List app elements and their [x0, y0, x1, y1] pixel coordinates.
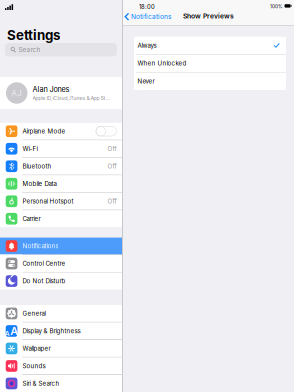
staticText: Airplane Mode: [22, 127, 65, 135]
staticText: A: [10, 324, 18, 338]
button[interactable]: Control Centre: [0, 255, 122, 272]
staticText: Mobile Data: [22, 180, 56, 187]
staticText: A: [5, 329, 10, 338]
staticText: Display & Brightness: [22, 327, 80, 335]
staticText: Always: [137, 42, 156, 49]
staticText: AJ: [11, 88, 22, 98]
staticText: Notifications: [22, 242, 58, 250]
staticText: Sounds: [22, 362, 45, 370]
button[interactable]: When Unlocked: [134, 55, 286, 72]
staticText: Never: [137, 77, 154, 85]
button[interactable]: Airplane Mode: [0, 123, 122, 140]
staticText: Off: [107, 145, 116, 152]
staticText: Settings: [7, 27, 60, 43]
staticText: Control Centre: [22, 260, 65, 267]
button[interactable]: Do Not Disturb: [0, 273, 122, 289]
button[interactable]: General: [0, 305, 122, 322]
button[interactable]: A: [0, 322, 122, 339]
button[interactable]: Never: [134, 73, 286, 90]
staticText: Personal Hotspot: [22, 197, 73, 205]
button[interactable]: Always: [134, 37, 286, 54]
button[interactable]: Siri & Search: [0, 375, 122, 392]
button[interactable]: Wi-Fi: [0, 140, 122, 157]
button[interactable]: Notifications: [122, 11, 174, 22]
staticText: Notifications: [131, 13, 171, 21]
staticText: Do Not Disturb: [22, 277, 65, 285]
staticText: Off: [107, 197, 116, 205]
staticText: Search: [19, 46, 41, 53]
staticText: Show Previews: [183, 12, 234, 20]
button[interactable]: Personal Hotspot: [0, 193, 122, 210]
staticText: Alan Jones: [32, 85, 69, 94]
button[interactable]: Notifications: [0, 238, 122, 254]
staticText: General: [22, 310, 45, 317]
staticText: 100%: [270, 4, 283, 9]
staticText: Wallpaper: [22, 345, 50, 352]
button[interactable]: AJ: [0, 77, 122, 109]
staticText: Siri & Search: [22, 380, 59, 387]
button[interactable]: Sounds: [0, 357, 122, 374]
button[interactable]: Mobile Data: [0, 175, 122, 192]
staticText: Wi-Fi: [22, 145, 37, 152]
button[interactable]: Wallpaper: [0, 340, 122, 357]
staticText: When Unlocked: [137, 60, 186, 67]
staticText: Apple ID, iCloud, iTunes & App St…: [32, 95, 109, 101]
button[interactable]: Bluetooth: [0, 158, 122, 175]
staticText: Bluetooth: [22, 162, 51, 170]
staticText: 18:00: [139, 3, 155, 10]
staticText: Off: [107, 162, 116, 170]
staticText: Carrier: [22, 215, 40, 222]
button[interactable]: Carrier: [0, 210, 122, 227]
